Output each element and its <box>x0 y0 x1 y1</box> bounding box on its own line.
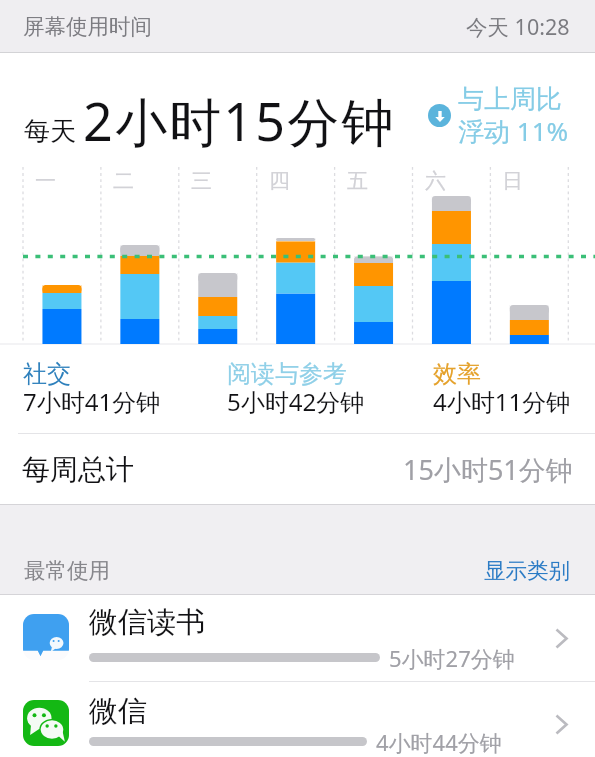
staticText: 与上周比 <box>458 83 562 116</box>
staticText: 微信 <box>89 693 147 730</box>
staticText: 4小时11分钟 <box>433 385 571 418</box>
staticText: 5小时27分钟 <box>389 643 515 673</box>
staticText: 每天 <box>24 115 76 148</box>
button[interactable]: 微信 <box>0 681 595 757</box>
staticText: 7小时41分钟 <box>23 385 161 418</box>
staticText: 六 <box>425 168 446 194</box>
staticText: 效率 <box>433 359 481 389</box>
button[interactable]: Decreased from last week <box>428 104 451 127</box>
staticText: 五 <box>347 168 368 194</box>
staticText: 一 <box>35 168 56 194</box>
staticText: 每周总计 <box>22 452 134 487</box>
staticText: 微信读书 <box>89 604 205 641</box>
button[interactable]: 每周总计 <box>22 434 573 505</box>
staticText: 二 <box>113 168 134 194</box>
button[interactable]: 效率 <box>433 359 595 419</box>
staticText: 日 <box>502 168 523 194</box>
button[interactable]: 社交 <box>23 359 213 419</box>
staticText: 15小时51分钟 <box>403 451 573 488</box>
staticText: 阅读与参考 <box>227 359 347 389</box>
staticText: 2小时15分钟 <box>83 85 396 156</box>
staticText: 浮动 11% <box>458 113 569 149</box>
button[interactable]: 微信读书 <box>0 593 595 679</box>
button[interactable]: 阅读与参考 <box>227 359 417 419</box>
staticText: 今天 10:28 <box>466 12 570 41</box>
staticText: 社交 <box>23 359 71 389</box>
staticText: 四 <box>269 168 290 194</box>
button[interactable]: 显示类别 <box>484 557 570 584</box>
staticText: 5小时42分钟 <box>227 385 365 418</box>
staticText: 最常使用 <box>24 557 110 584</box>
staticText: 4小时44分钟 <box>376 727 502 757</box>
button[interactable]: 屏幕使用时间 <box>0 0 595 52</box>
staticText: 屏幕使用时间 <box>23 13 152 40</box>
staticText: 三 <box>191 168 212 194</box>
